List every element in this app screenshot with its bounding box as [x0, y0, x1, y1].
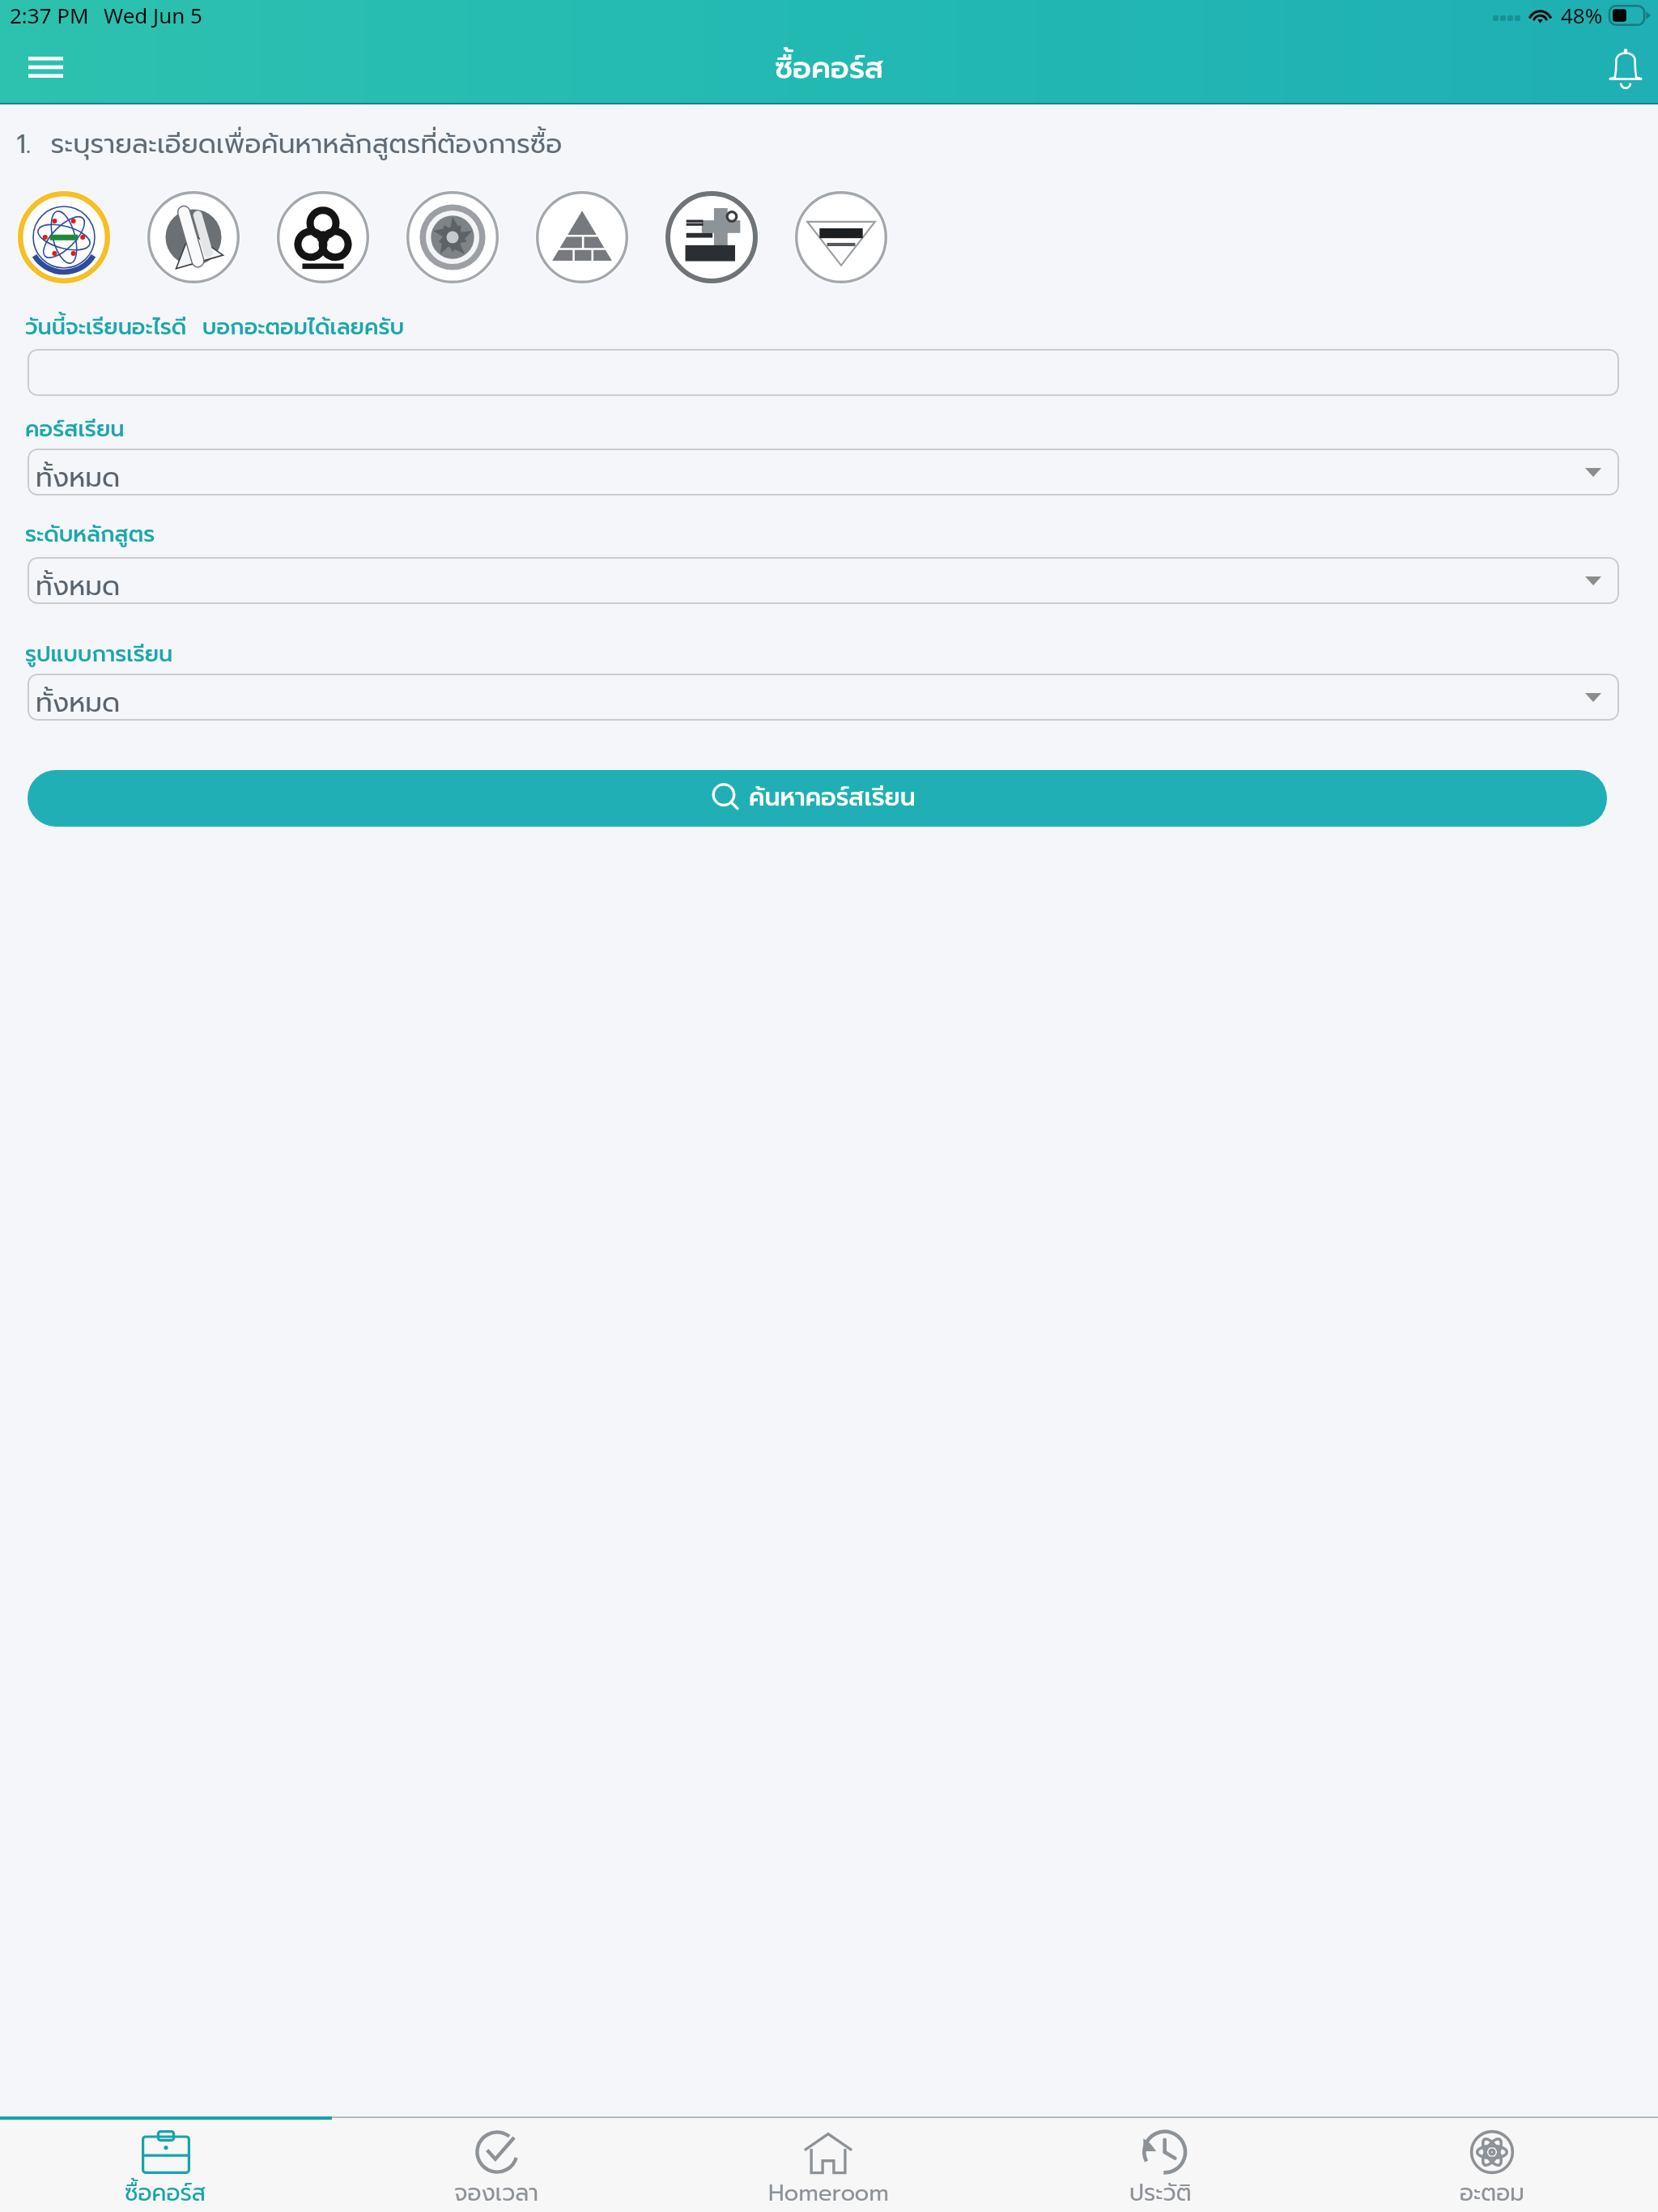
button[interactable]: ทั้งหมด — [28, 674, 1619, 721]
staticText: ซื้อคอร์ส — [775, 45, 884, 91]
staticText: ทั้งหมด — [36, 683, 121, 721]
button[interactable]: อะตอม — [1326, 2120, 1658, 2212]
staticText: 48% — [1561, 1, 1603, 29]
staticText: Wed Jun 5 — [104, 1, 202, 29]
staticText: 2:37 PM — [10, 1, 89, 29]
button[interactable]: Notifications — [1593, 39, 1658, 96]
button[interactable]: ซื้อคอร์ส — [0, 2120, 331, 2212]
staticText: Homeroom — [768, 2176, 889, 2210]
staticText: ประวัติ — [1129, 2176, 1192, 2210]
button[interactable]: ประวัติ — [994, 2120, 1326, 2212]
button[interactable]: Course option 5 — [535, 190, 629, 284]
staticText: ทั้งหมด — [36, 457, 121, 496]
button[interactable]: Menu — [13, 39, 78, 96]
button[interactable]: Course option 3 — [276, 190, 370, 284]
staticText: ซื้อคอร์ส — [125, 2176, 206, 2210]
staticText: วันนี้จะเรียนอะไรดี บอกอะตอมได้เลยครับ — [25, 311, 405, 344]
staticText: 1. ระบุรายละเอียดเพื่อค้นหาหลักสูตรที่ต้… — [16, 124, 563, 164]
staticText: ระดับหลักสูตร — [25, 518, 155, 551]
button[interactable] — [28, 349, 1619, 396]
staticText: อะตอม — [1460, 2176, 1524, 2210]
button[interactable]: จองเวลา — [331, 2120, 662, 2212]
button[interactable]: Course option 7 — [794, 190, 888, 284]
staticText: ทั้งหมด — [36, 566, 121, 604]
staticText: ค้นหาคอร์สเรียน — [749, 779, 916, 815]
button[interactable]: Course option 4 — [406, 190, 500, 284]
button[interactable]: Course option 1 — [17, 190, 111, 284]
staticText: รูปแบบการเรียน — [25, 638, 173, 671]
button[interactable]: ค้นหาคอร์สเรียน — [28, 770, 1607, 827]
staticText: คอร์สเรียน — [25, 413, 125, 446]
button[interactable]: Homeroom — [662, 2120, 994, 2212]
staticText: จองเวลา — [454, 2176, 539, 2210]
button[interactable]: ทั้งหมด — [28, 449, 1619, 496]
button[interactable]: ทั้งหมด — [28, 557, 1619, 604]
button[interactable]: Course option 6 — [665, 190, 759, 284]
button[interactable]: Course option 2 — [147, 190, 240, 284]
